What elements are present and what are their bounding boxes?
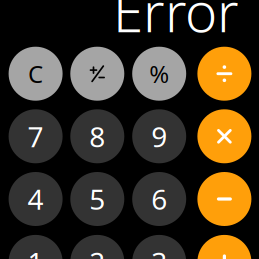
staticText: Error	[113, 0, 239, 47]
staticText: 1	[28, 243, 44, 259]
button[interactable]: Divide	[197, 47, 251, 101]
button[interactable]: Plus minus	[70, 47, 124, 101]
button[interactable]: 8	[70, 109, 124, 163]
button[interactable]: 4	[9, 172, 63, 226]
staticText: 9	[151, 118, 167, 155]
staticText: 3	[151, 243, 167, 259]
staticText: C	[28, 58, 43, 90]
staticText: %	[149, 58, 169, 90]
staticText: 2	[89, 243, 105, 259]
button[interactable]: 3	[132, 235, 186, 259]
button[interactable]: 5	[70, 172, 124, 226]
button[interactable]: Add	[197, 235, 251, 259]
staticText: 7	[28, 118, 44, 155]
staticText: 6	[151, 180, 167, 218]
button[interactable]: 9	[132, 109, 186, 163]
button[interactable]: %	[132, 47, 186, 101]
button[interactable]: 7	[9, 109, 63, 163]
button[interactable]: 6	[132, 172, 186, 226]
button[interactable]: 1	[9, 235, 63, 259]
button[interactable]: C	[9, 47, 63, 101]
button[interactable]: 2	[70, 235, 124, 259]
staticText: 8	[89, 118, 105, 155]
staticText: 4	[28, 180, 44, 218]
button[interactable]: Multiply	[197, 109, 251, 163]
button[interactable]: Subtract	[197, 172, 251, 226]
staticText: 5	[89, 180, 105, 218]
